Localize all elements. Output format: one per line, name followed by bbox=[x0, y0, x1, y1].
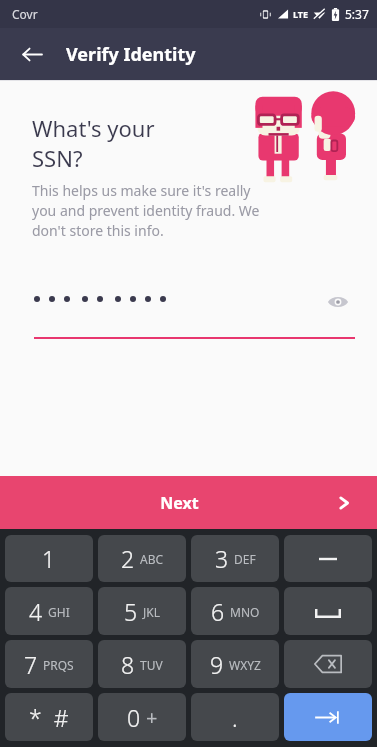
button[interactable]: 0 bbox=[98, 693, 186, 741]
staticText: TUV bbox=[140, 657, 163, 673]
staticText: DEF bbox=[234, 551, 256, 567]
staticText: . bbox=[232, 702, 238, 733]
staticText: This helps us make sure it's really you … bbox=[32, 181, 260, 240]
button[interactable]: 4 bbox=[5, 587, 93, 635]
button[interactable]: 3 bbox=[191, 535, 279, 582]
button[interactable]: 8 bbox=[98, 640, 186, 688]
button[interactable]: * # bbox=[5, 693, 93, 741]
staticText: 2 bbox=[121, 543, 135, 574]
staticText: PRQS bbox=[43, 657, 74, 673]
staticText: 0 bbox=[127, 702, 141, 733]
staticText: + bbox=[146, 704, 158, 731]
button[interactable]: Back bbox=[12, 34, 52, 74]
staticText: GHI bbox=[48, 604, 70, 620]
staticText: ABC bbox=[140, 551, 164, 567]
button[interactable]: Space bbox=[284, 587, 372, 635]
staticText: SSN? bbox=[32, 143, 83, 173]
staticText: LTE bbox=[293, 8, 309, 20]
staticText: 7 bbox=[24, 649, 38, 680]
staticText: 4 bbox=[29, 596, 43, 627]
staticText: WXYZ bbox=[229, 657, 261, 673]
button[interactable]: Delete bbox=[284, 640, 372, 688]
button[interactable]: Dash bbox=[284, 535, 372, 582]
staticText: MNO bbox=[230, 604, 260, 620]
staticText: 9 bbox=[210, 649, 224, 680]
button[interactable]: 2 bbox=[98, 535, 186, 582]
staticText: Covr bbox=[12, 6, 38, 22]
button[interactable]: 9 bbox=[191, 640, 279, 688]
button[interactable]: 1 bbox=[5, 535, 93, 582]
button[interactable]: . bbox=[191, 693, 279, 741]
staticText: Verify Identity bbox=[66, 42, 196, 67]
button[interactable]: 6 bbox=[191, 587, 279, 635]
staticText: 1 bbox=[42, 543, 56, 574]
staticText: Next bbox=[160, 492, 199, 514]
staticText: JKL bbox=[143, 604, 160, 620]
staticText: 5:37 bbox=[345, 6, 369, 22]
staticText: What's your bbox=[32, 113, 155, 143]
staticText: 5 bbox=[124, 596, 138, 627]
button[interactable]: Next bbox=[0, 476, 377, 529]
staticText: 3 bbox=[215, 543, 229, 574]
staticText: * # bbox=[29, 702, 69, 733]
button[interactable]: Next field bbox=[284, 693, 372, 741]
staticText: 8 bbox=[121, 649, 135, 680]
button[interactable]: 5 bbox=[98, 587, 186, 635]
button[interactable]: 7 bbox=[5, 640, 93, 688]
staticText: 6 bbox=[211, 596, 225, 627]
button[interactable]: Show SSN bbox=[321, 285, 355, 319]
